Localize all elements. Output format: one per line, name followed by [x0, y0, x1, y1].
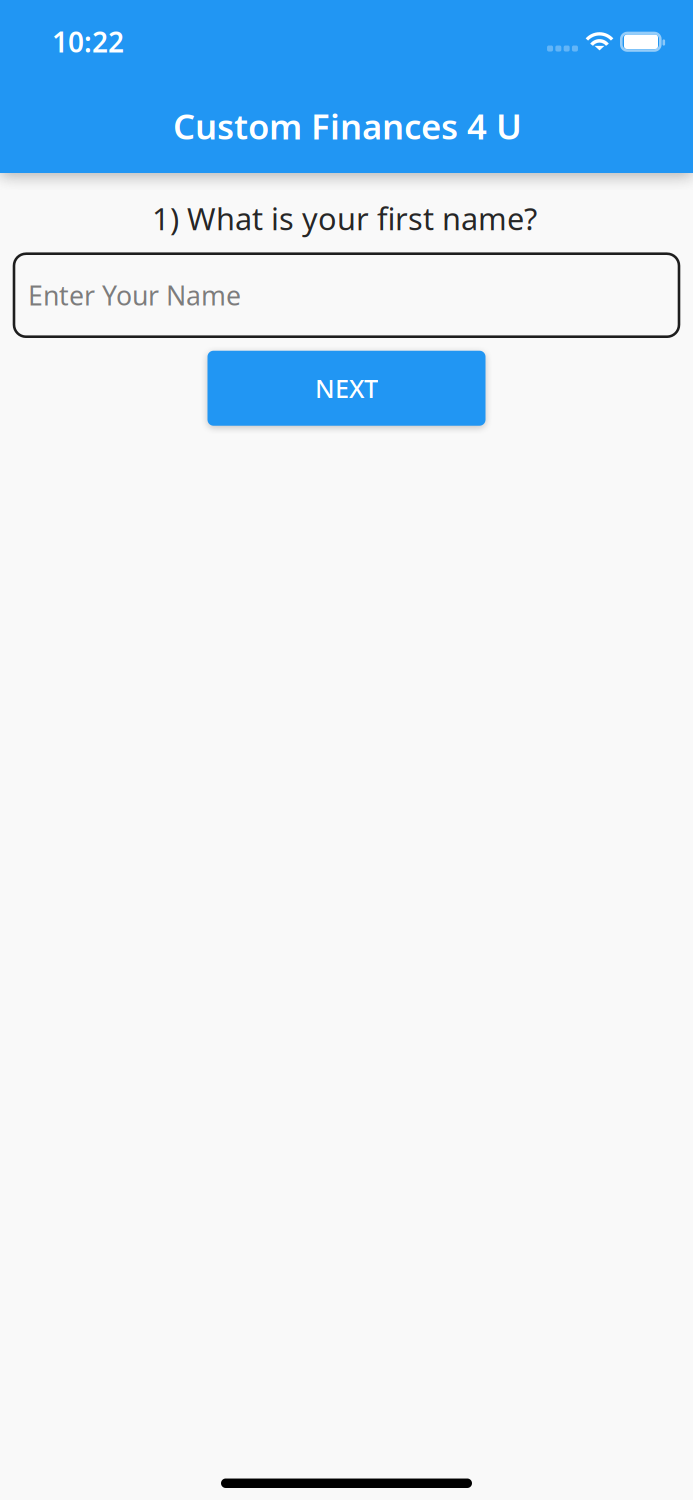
staticText: 10:22 — [52, 23, 124, 60]
button[interactable]: Enter Your Name — [14, 254, 679, 337]
staticText: NEXT — [315, 371, 378, 405]
staticText: Custom Finances 4 U — [173, 103, 522, 149]
staticText: 1) What is your first name? — [152, 198, 537, 239]
staticText: Enter Your Name — [28, 277, 241, 313]
button[interactable]: NEXT — [207, 351, 485, 426]
